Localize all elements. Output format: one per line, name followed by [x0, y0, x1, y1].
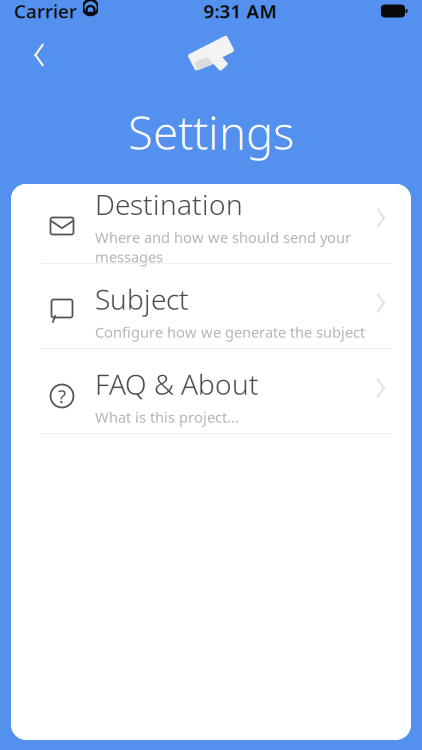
staticText: Subject	[95, 280, 189, 317]
staticText: Destination	[95, 185, 243, 223]
button[interactable]: Subject	[11, 269, 411, 354]
staticText: What is this project...	[95, 407, 239, 427]
button[interactable]: ?	[11, 354, 411, 439]
staticText: Configure how we generate the subject	[95, 322, 365, 342]
staticText: FAQ & About	[95, 365, 259, 402]
staticText: Settings	[128, 102, 294, 162]
button[interactable]: Back	[17, 33, 61, 77]
staticText: Where and how we should send your messag…	[95, 228, 351, 267]
staticText: 9:31 AM	[203, 0, 276, 23]
staticText: Carrier	[14, 0, 77, 23]
button[interactable]: Destination	[11, 184, 411, 269]
staticText: ?	[58, 384, 66, 408]
